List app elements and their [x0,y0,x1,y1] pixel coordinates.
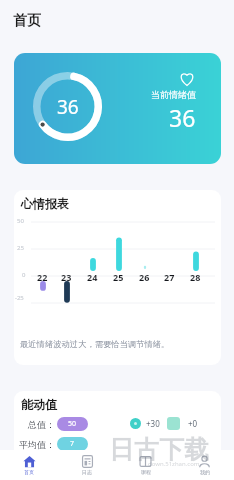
staticText: 27 [164,271,175,283]
staticText: 24 [87,271,98,283]
staticText: 50 [17,217,24,225]
staticText: +0 [188,418,198,429]
staticText: 我的 [200,469,210,475]
staticText: 首页 [13,12,41,30]
staticText: down.51zhan.com [148,460,200,468]
staticText: 25 [17,244,24,252]
staticText: 23 [61,271,72,283]
staticText: 36 [169,102,196,133]
staticText: 25 [113,271,124,283]
staticText: 心情报表 [21,196,69,211]
staticText: 26 [139,271,150,283]
button[interactable]: 36 [14,53,221,164]
staticText: 日古下载 [109,434,209,465]
staticText: 最近情绪波动过大，需要恰当调节情绪。 [20,339,170,349]
staticText: 课程 [141,469,151,475]
staticText: 日志 [82,469,92,475]
button[interactable]: 课程 [116,450,175,480]
staticText: 当前情绪值 [151,89,196,100]
staticText: 28 [190,271,201,283]
button[interactable]: 首页 [0,450,58,480]
staticText: 0 [22,271,26,279]
staticText: +30 [146,418,160,429]
staticText: 36 [57,94,79,120]
staticText: 22 [37,271,48,283]
button[interactable]: 日志 [58,450,116,480]
staticText: 首页 [24,469,34,475]
staticText: 平均值： [19,439,55,450]
staticText: 能动值 [21,397,57,412]
staticText: 7 [70,439,75,449]
button[interactable]: 我的 [175,450,234,480]
staticText: 总值： [28,419,55,430]
staticText: -25 [15,294,24,302]
staticText: 50 [68,419,77,429]
